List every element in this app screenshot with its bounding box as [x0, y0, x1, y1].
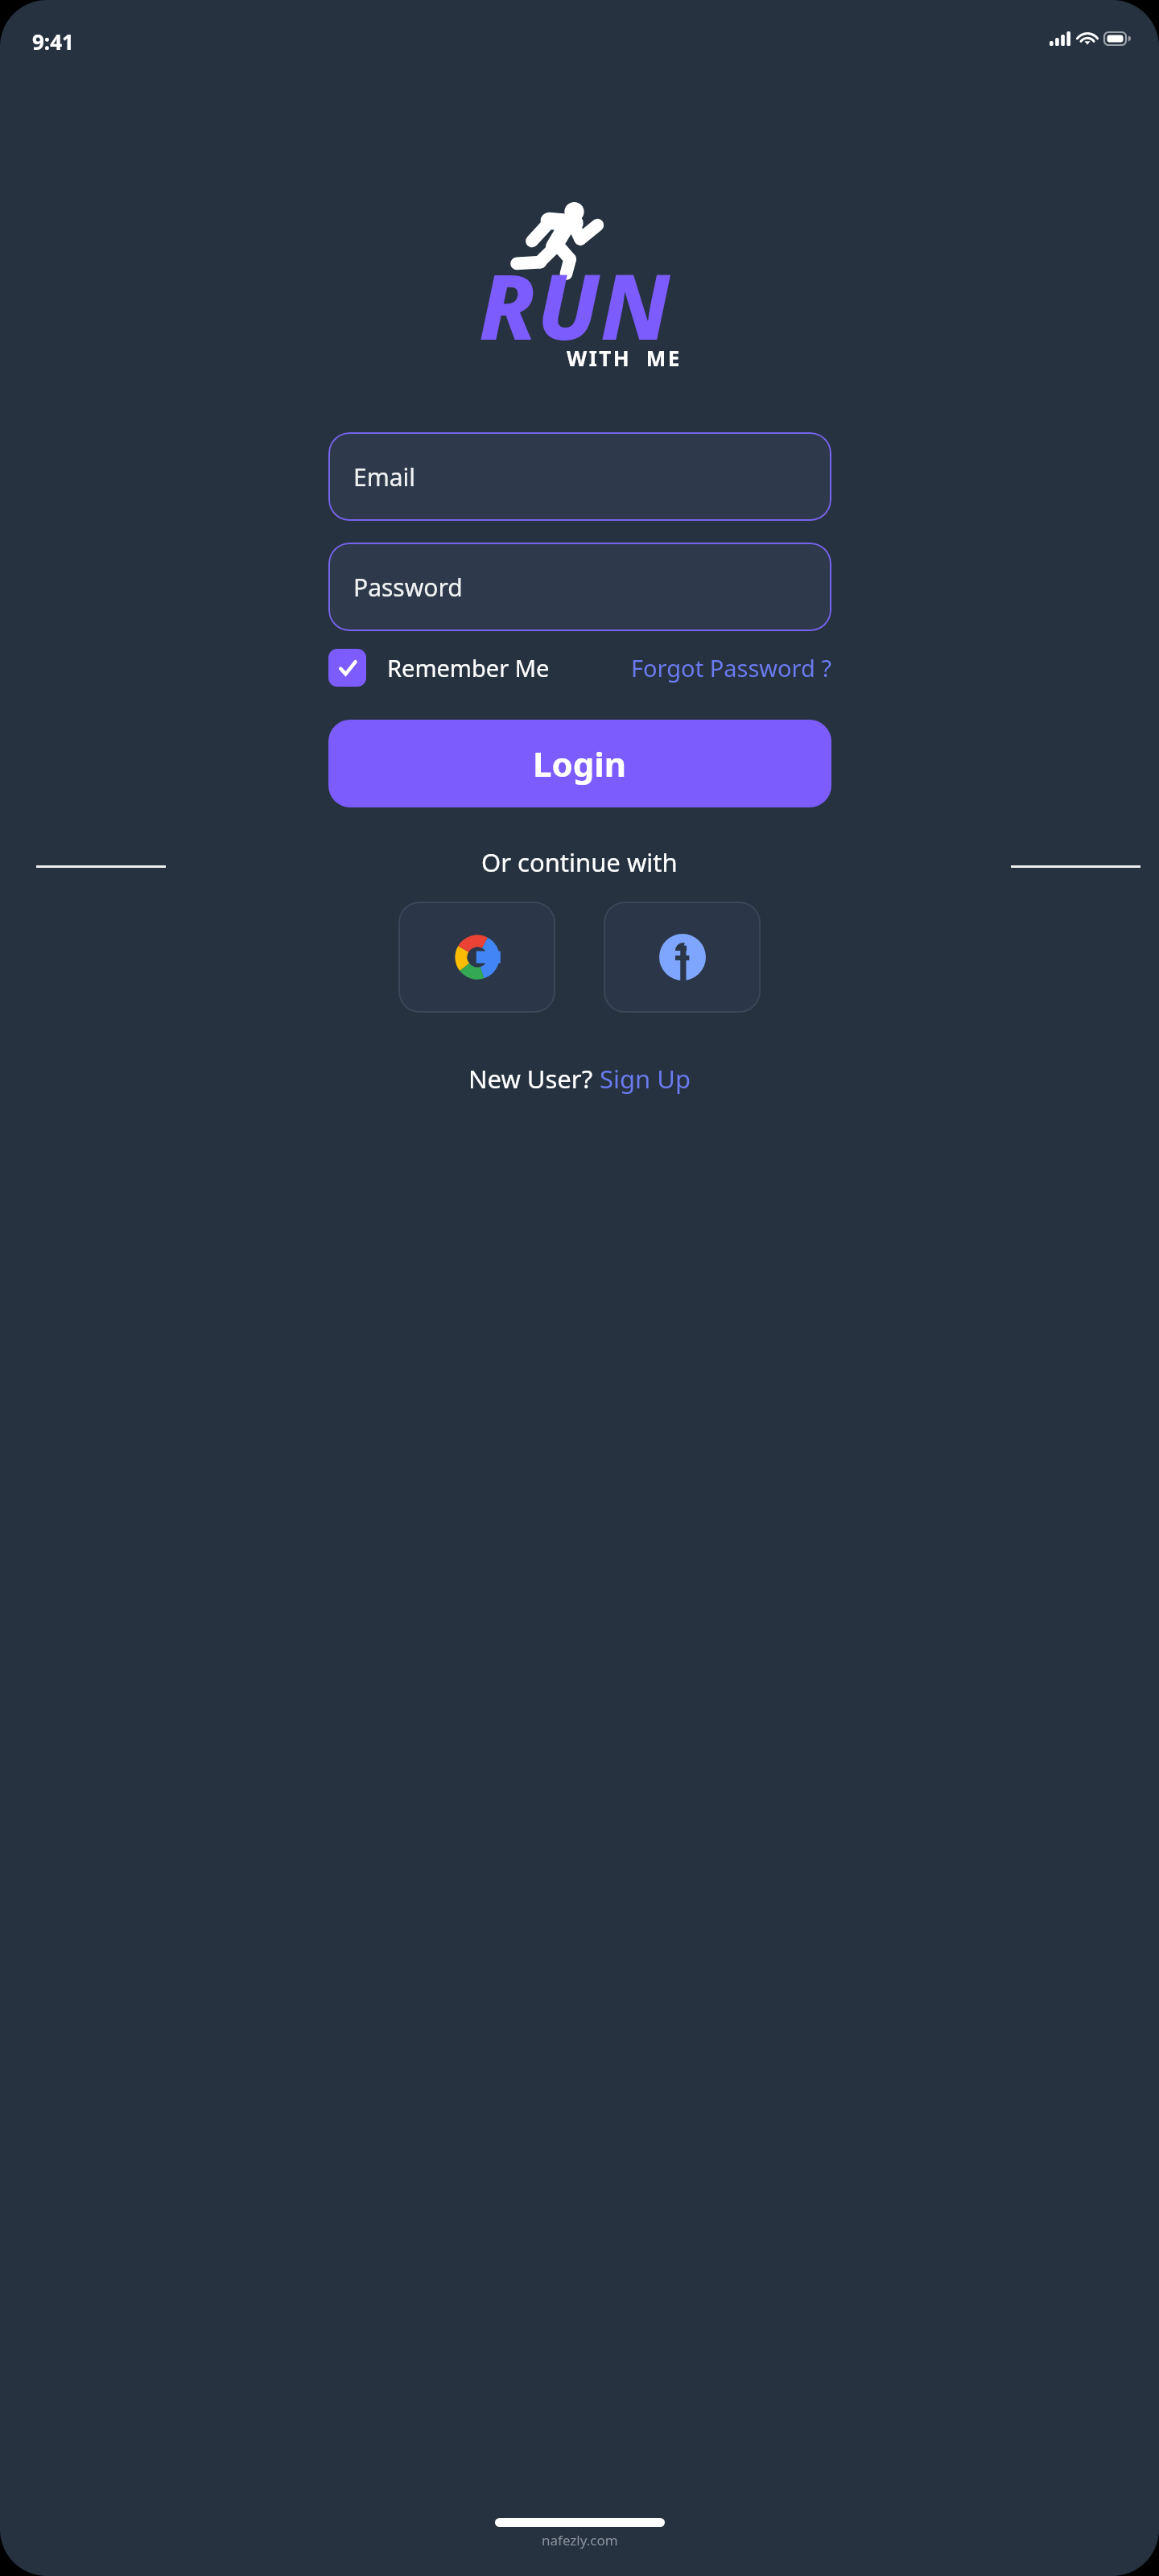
staticText: Or continue with — [481, 845, 678, 873]
staticText: Forgot Password ? — [631, 652, 831, 683]
staticText: 9:41 — [32, 27, 74, 56]
button[interactable]: Login — [328, 720, 831, 807]
button[interactable]: Remember Me — [328, 649, 550, 687]
staticText: Sign Up — [600, 1062, 691, 1096]
staticText: Email — [353, 460, 416, 493]
button[interactable]: Forgot Password ? — [631, 652, 831, 683]
staticText: nafezly.com — [542, 2531, 618, 2549]
staticText: Login — [533, 741, 627, 786]
staticText: RUN — [479, 243, 671, 366]
staticText: Remember Me — [387, 652, 550, 683]
button[interactable]: Password — [328, 543, 831, 631]
button[interactable]: New User? — [468, 1062, 691, 1096]
button[interactable]: Email — [328, 432, 831, 521]
button[interactable]: Continue with Google — [398, 902, 555, 1013]
staticText: New User? — [468, 1062, 600, 1096]
staticText: WITH ME — [567, 344, 682, 372]
button[interactable]: Continue with Facebook — [604, 902, 761, 1013]
staticText: Password — [353, 571, 463, 604]
